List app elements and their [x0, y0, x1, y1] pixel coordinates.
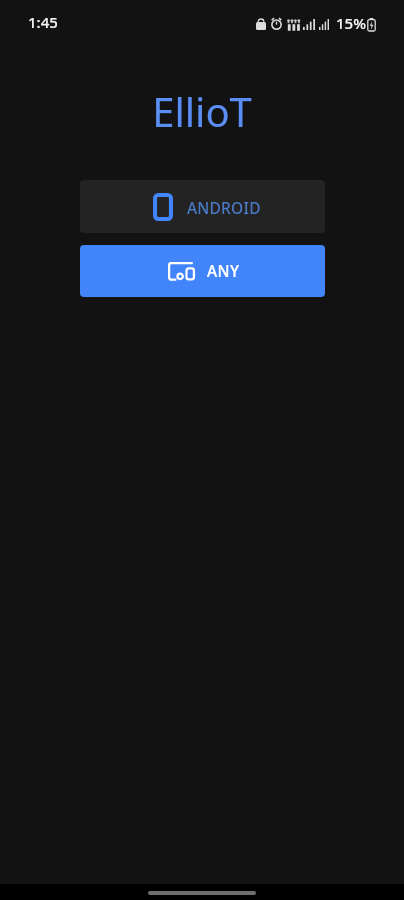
button[interactable]: Android device [80, 180, 325, 233]
staticText: ANDROID [187, 197, 261, 218]
staticText: 15% [336, 13, 366, 33]
other: Android device [153, 193, 173, 221]
staticText: 1:45 [28, 12, 58, 32]
button[interactable]: Any device [80, 245, 325, 297]
staticText: ANY [207, 260, 240, 281]
other: Any device [168, 262, 195, 280]
staticText: EllioT [0, 84, 404, 138]
